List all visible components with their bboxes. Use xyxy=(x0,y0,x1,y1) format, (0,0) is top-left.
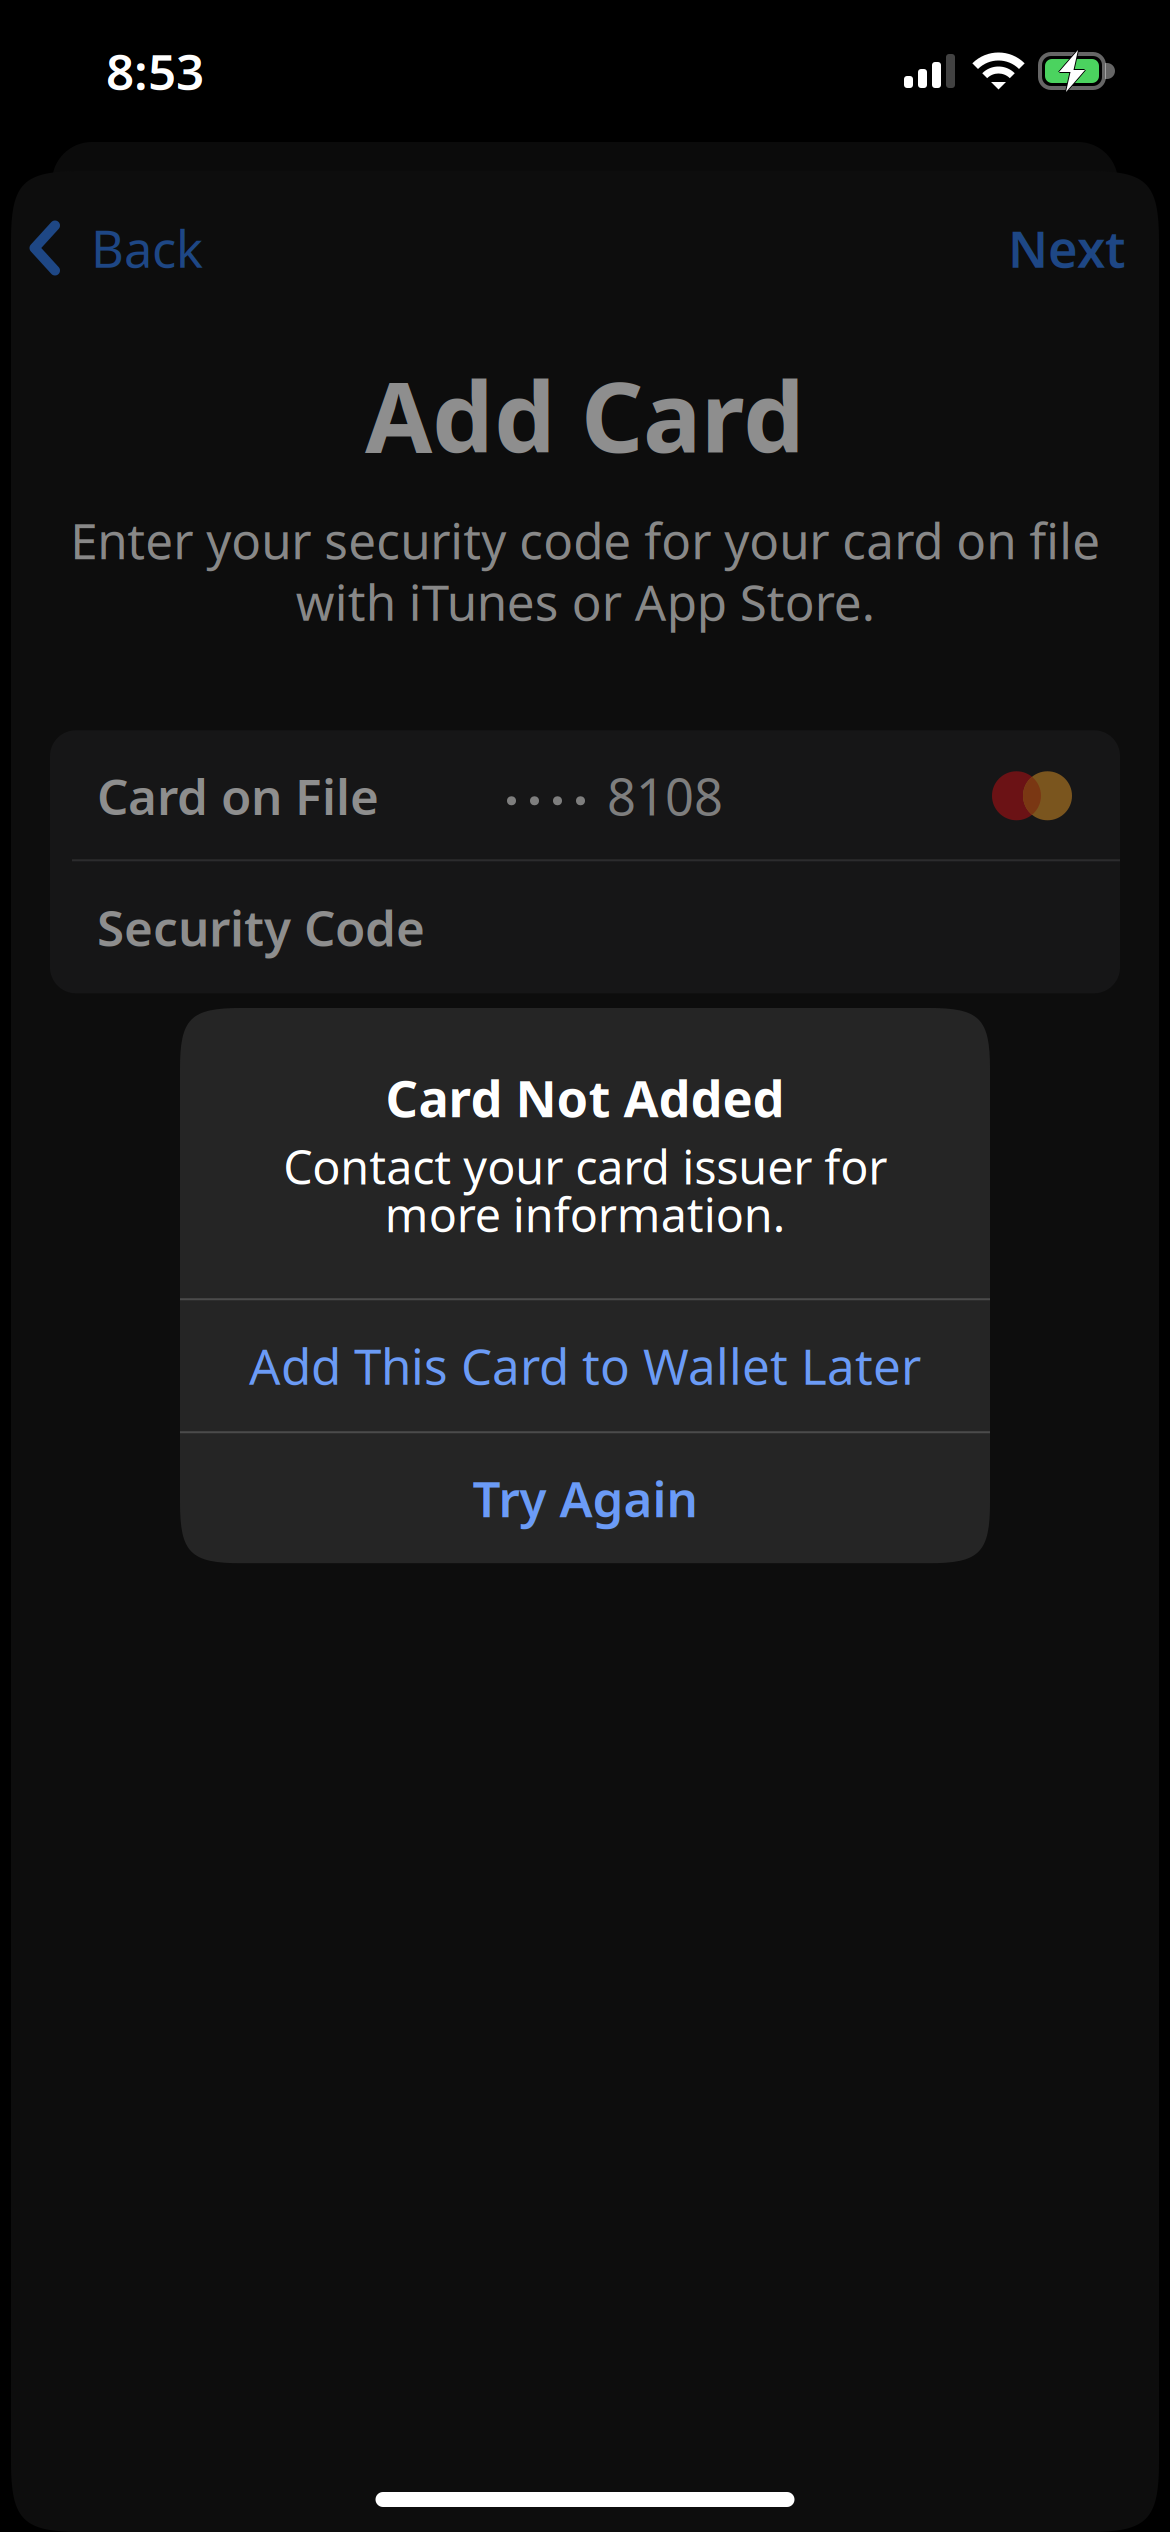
button[interactable]: Security Code xyxy=(50,861,1120,993)
staticText: 8:53 xyxy=(106,38,204,104)
staticText: Enter your security code for your card o… xyxy=(70,507,1100,634)
button[interactable]: Add This Card to Wallet Later xyxy=(180,1300,990,1431)
button[interactable]: Back xyxy=(0,202,227,294)
button[interactable]: Card on File xyxy=(50,730,1120,861)
staticText: Security Code xyxy=(97,894,425,960)
staticText: Card Not Added xyxy=(385,1064,784,1131)
staticText: Add Card xyxy=(365,350,805,479)
button[interactable]: Try Again xyxy=(180,1433,990,1563)
staticText: Next xyxy=(1008,214,1126,282)
staticText: Contact your card issuer for more inform… xyxy=(283,1135,887,1245)
staticText: Add This Card to Wallet Later xyxy=(249,1333,921,1398)
staticText: Try Again xyxy=(472,1465,697,1531)
button[interactable]: Next xyxy=(964,202,1170,294)
staticText: 8108 xyxy=(607,762,723,829)
staticText: Back xyxy=(91,214,203,282)
staticText: Card on File xyxy=(97,763,379,828)
